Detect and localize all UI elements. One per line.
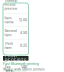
staticText: 1.80 <box>21 64 27 69</box>
staticText: Fast Bluetooth printing <box>3 62 39 66</box>
staticText: PRINT RECEIPTS <box>5 53 27 63</box>
staticText: Third item <box>4 41 12 50</box>
staticText: 12.00 <box>19 18 27 22</box>
staticText: TOTAL <box>5 70 13 72</box>
staticText: Works with 58mm printers <box>3 67 45 71</box>
staticText: 9.25 <box>20 43 27 48</box>
staticText: Second item <box>4 29 16 37</box>
staticText: 4.50 <box>20 31 27 35</box>
staticText: Thermal receipt preview <box>4 0 17 10</box>
staticText: Item name <box>4 16 13 24</box>
staticText: Subtotal <box>4 54 15 63</box>
staticText: 25.75 <box>18 56 27 60</box>
staticText: Tax <box>4 64 10 69</box>
